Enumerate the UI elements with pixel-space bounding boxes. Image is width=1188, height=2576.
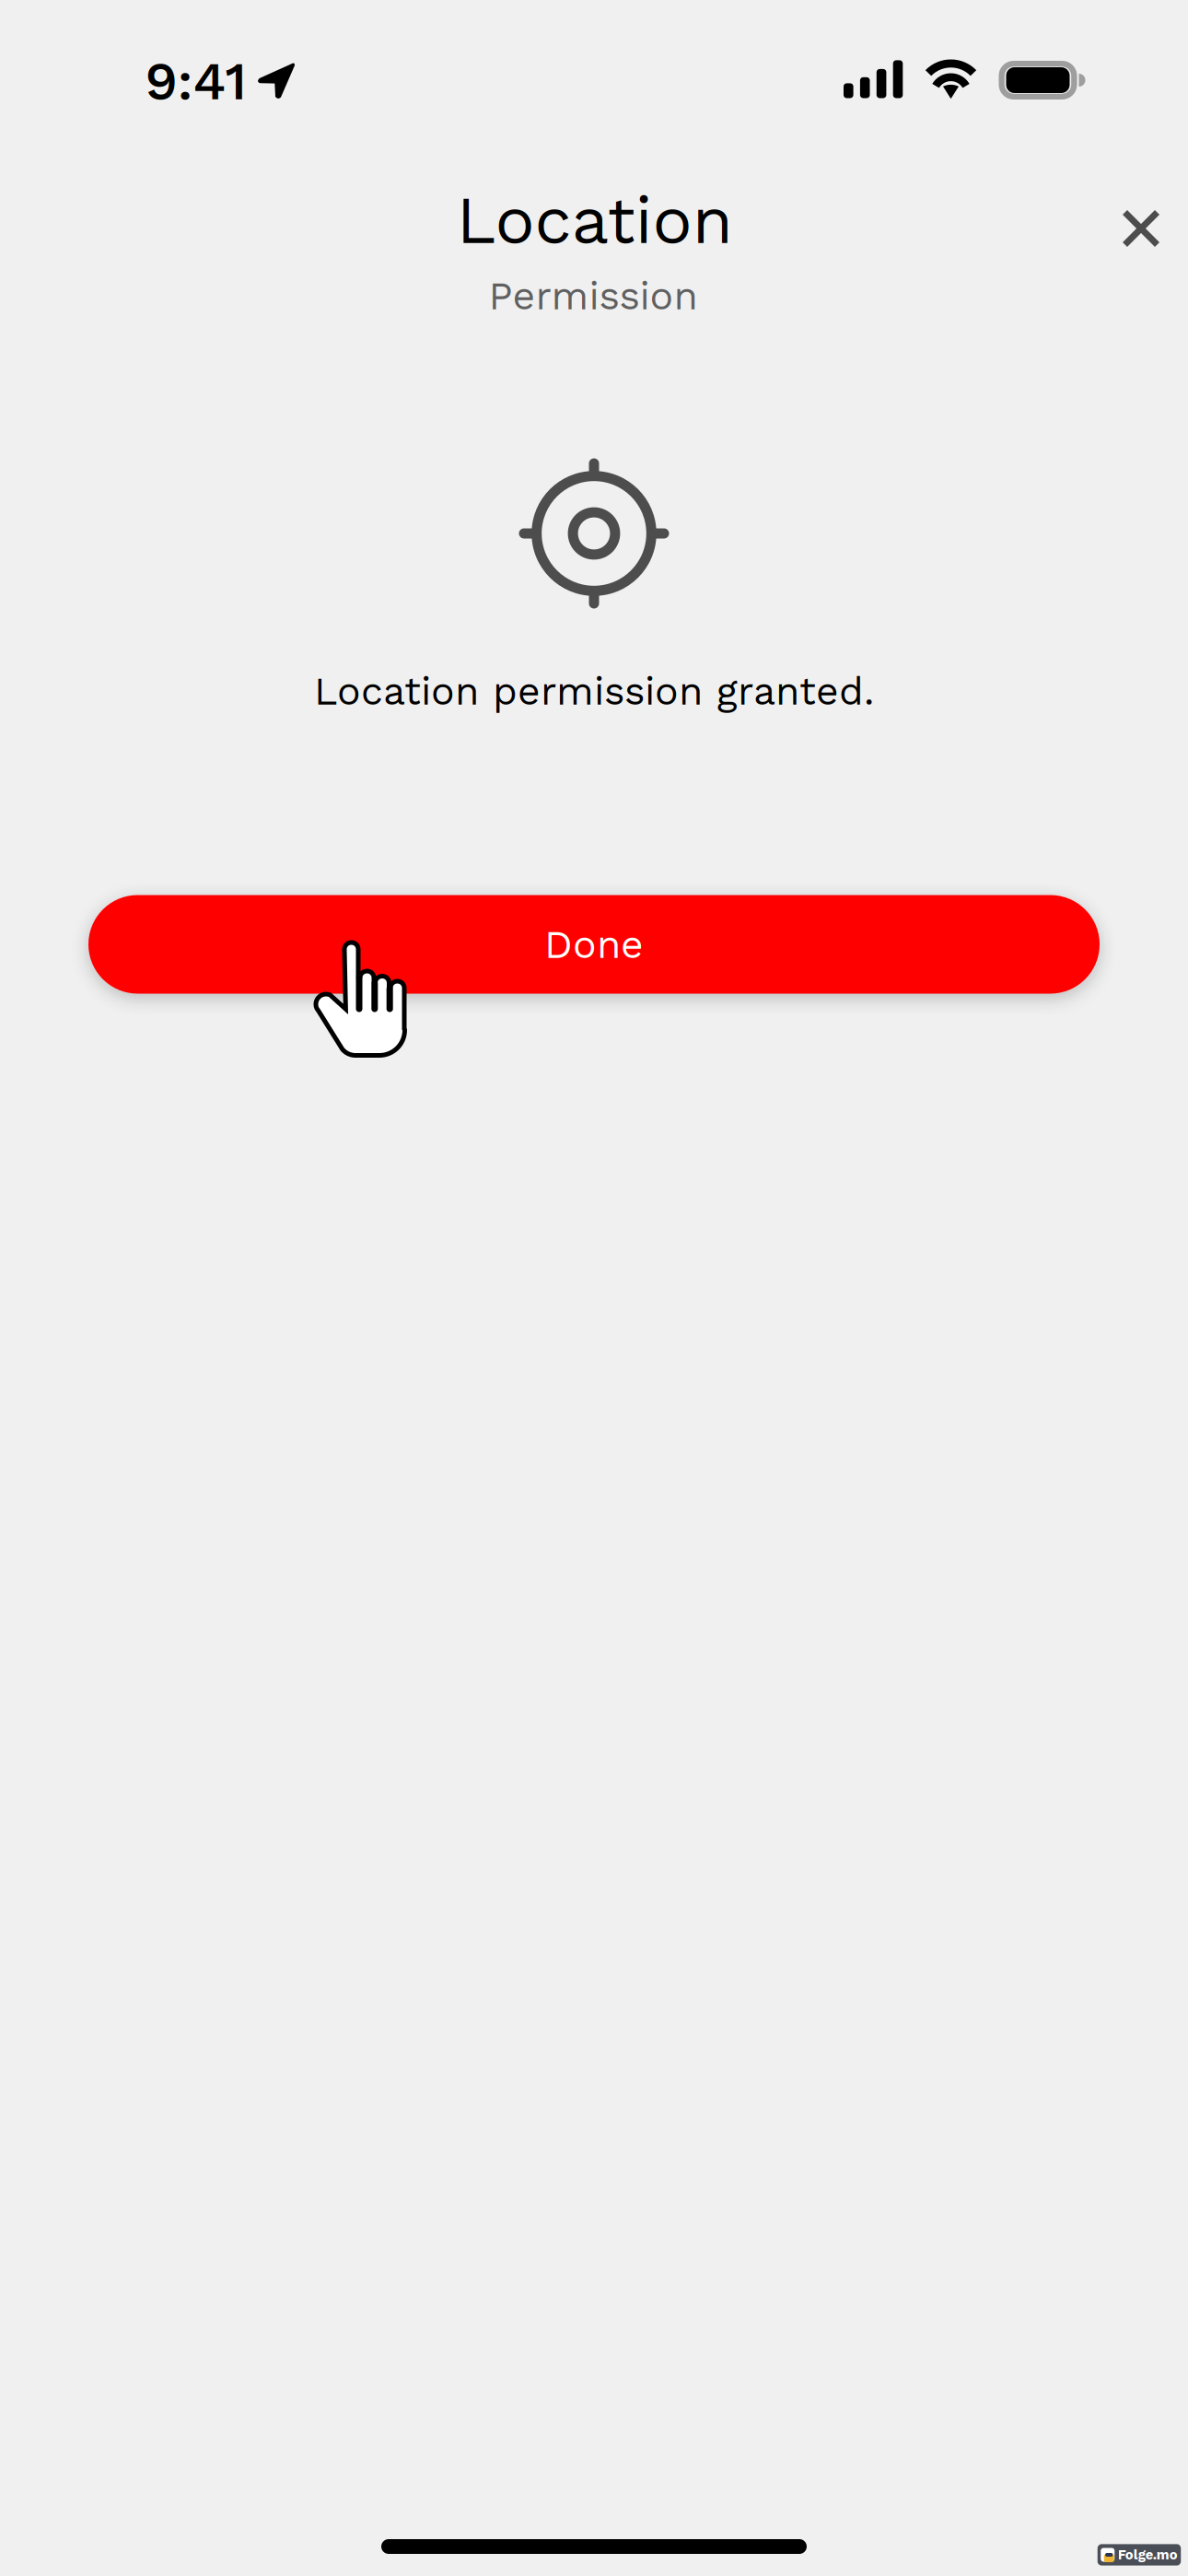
button[interactable]: Close	[1090, 178, 1188, 279]
staticText: Folge.mo	[1118, 2547, 1178, 2563]
staticText: Permission	[489, 273, 698, 319]
staticText: 9:41	[145, 50, 246, 112]
staticText: Done	[544, 921, 644, 967]
staticText: Location	[456, 181, 734, 259]
staticText: Location permission granted.	[314, 668, 874, 714]
button[interactable]: Done	[88, 895, 1100, 994]
